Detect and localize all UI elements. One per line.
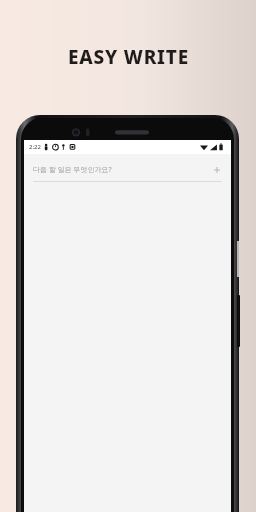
button[interactable]: Add task bbox=[212, 165, 222, 175]
staticText: 다음 할 일은 무엇인가요? bbox=[33, 165, 212, 175]
staticText: EASY WRITE bbox=[68, 44, 189, 70]
button[interactable]: 다음 할 일은 무엇인가요? bbox=[33, 165, 222, 182]
button[interactable]: Volume bbox=[237, 295, 240, 347]
staticText: 2:22 bbox=[29, 143, 41, 151]
